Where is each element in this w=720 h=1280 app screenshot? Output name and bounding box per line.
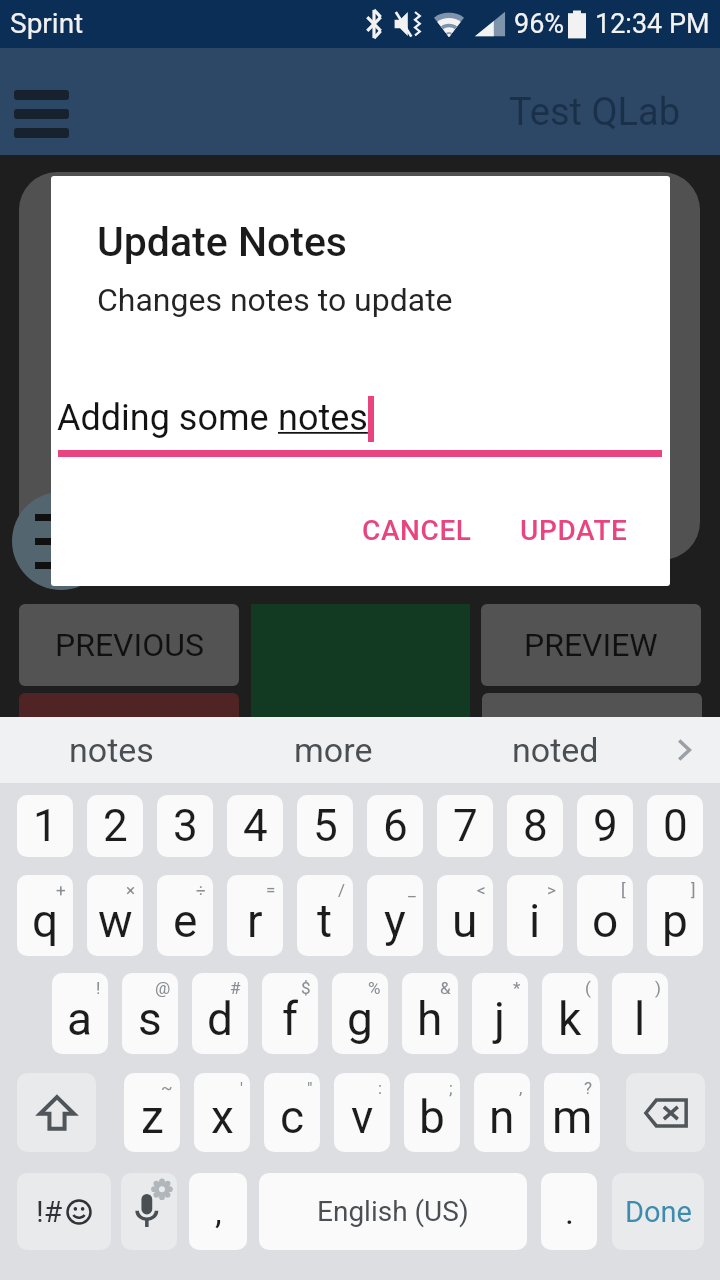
button[interactable]: 5: [297, 795, 353, 857]
button[interactable]: $: [262, 973, 318, 1054]
staticText: s: [138, 992, 162, 1046]
button[interactable]: =: [227, 875, 283, 956]
button[interactable]: &: [402, 973, 458, 1054]
staticText: (: [585, 978, 591, 998]
staticText: Update Notes: [97, 218, 347, 266]
staticText: ]: [691, 880, 696, 900]
staticText: 8: [523, 800, 548, 852]
button[interactable]: ~: [124, 1073, 180, 1152]
button[interactable]: +: [17, 875, 73, 956]
button[interactable]: .: [541, 1173, 597, 1250]
button[interactable]: ;: [404, 1073, 460, 1152]
staticText: /: [338, 880, 346, 900]
staticText: 0: [663, 800, 688, 852]
button[interactable]: UPDATE: [506, 498, 642, 563]
staticText: ,: [215, 1192, 222, 1232]
button[interactable]: ?: [544, 1073, 600, 1152]
staticText: v: [351, 1090, 374, 1144]
button[interactable]: Done: [612, 1173, 704, 1250]
button[interactable]: [482, 693, 702, 723]
button[interactable]: [19, 693, 239, 723]
staticText: ,: [519, 1078, 523, 1098]
button[interactable]: Voice input: [121, 1173, 177, 1250]
button[interactable]: @: [122, 973, 178, 1054]
button[interactable]: 6: [367, 795, 423, 857]
button[interactable]: 8: [507, 795, 563, 857]
button[interactable]: 7: [437, 795, 493, 857]
staticText: more: [294, 730, 373, 770]
staticText: #: [230, 978, 241, 998]
staticText: PREVIEW: [524, 626, 658, 664]
button[interactable]: >: [507, 875, 563, 956]
button[interactable]: _: [367, 875, 423, 956]
button[interactable]: ,: [474, 1073, 530, 1152]
staticText: ": [307, 1078, 313, 1098]
button[interactable]: PREVIEW: [481, 604, 701, 686]
staticText: ': [240, 1078, 243, 1098]
button[interactable]: English (US): [259, 1173, 527, 1250]
staticText: Done: [625, 1195, 692, 1229]
staticText: noted: [512, 730, 599, 770]
button[interactable]: Menu: [12, 492, 110, 590]
staticText: f: [282, 992, 298, 1046]
button[interactable]: 4: [227, 795, 283, 857]
button[interactable]: [251, 604, 470, 774]
button[interactable]: ": [264, 1073, 320, 1152]
button[interactable]: More suggestions: [666, 732, 702, 768]
staticText: 5: [313, 800, 338, 852]
staticText: d: [207, 992, 233, 1046]
staticText: +: [56, 880, 66, 900]
staticText: 12:34 PM: [595, 8, 710, 40]
button[interactable]: ,: [189, 1173, 247, 1250]
button[interactable]: /: [297, 875, 353, 956]
staticText: UPDATE: [520, 514, 628, 547]
button[interactable]: ÷: [157, 875, 213, 956]
staticText: 3: [173, 800, 198, 852]
staticText: _: [408, 880, 416, 900]
button[interactable]: CANCEL: [348, 498, 486, 563]
staticText: ?: [584, 1078, 593, 1098]
button[interactable]: [: [577, 875, 633, 956]
staticText: PREVIOUS: [55, 626, 204, 664]
staticText: 9: [593, 800, 618, 852]
button[interactable]: #: [192, 973, 248, 1054]
staticText: ~: [161, 1078, 173, 1098]
staticText: o: [592, 894, 619, 948]
staticText: z: [141, 1090, 164, 1144]
button[interactable]: (: [542, 973, 598, 1054]
staticText: q: [32, 894, 59, 948]
button[interactable]: ×: [87, 875, 143, 956]
button[interactable]: 1: [17, 795, 73, 857]
button[interactable]: %: [332, 973, 388, 1054]
button[interactable]: *: [472, 973, 528, 1054]
staticText: $: [301, 978, 311, 998]
staticText: Adding some: [57, 397, 278, 439]
button[interactable]: 0: [647, 795, 703, 857]
staticText: u: [452, 894, 478, 948]
button[interactable]: Symbols and emoji: [17, 1173, 111, 1250]
button[interactable]: Open navigation drawer: [14, 90, 69, 138]
staticText: 4: [243, 800, 268, 852]
staticText: 6: [383, 800, 408, 852]
button[interactable]: Backspace: [626, 1073, 705, 1152]
button[interactable]: more: [222, 717, 444, 783]
button[interactable]: 9: [577, 795, 633, 857]
staticText: &: [440, 978, 451, 998]
staticText: @: [155, 978, 171, 998]
button[interactable]: noted: [444, 717, 666, 783]
button[interactable]: notes: [0, 717, 222, 783]
button[interactable]: 2: [87, 795, 143, 857]
button[interactable]: <: [437, 875, 493, 956]
button[interactable]: !: [52, 973, 108, 1054]
button[interactable]: PREVIOUS: [19, 604, 239, 686]
staticText: ): [655, 978, 661, 998]
button[interactable]: ': [194, 1073, 250, 1152]
button[interactable]: Shift: [17, 1073, 96, 1152]
staticText: %: [368, 978, 381, 998]
button[interactable]: 3: [157, 795, 213, 857]
button[interactable]: :: [334, 1073, 390, 1152]
button[interactable]: ]: [647, 875, 703, 956]
staticText: m: [552, 1090, 593, 1144]
staticText: l: [634, 992, 646, 1046]
button[interactable]: ): [612, 973, 668, 1054]
